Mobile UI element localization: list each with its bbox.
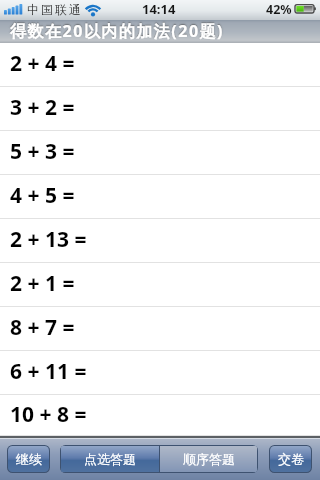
staticText: 10 + 8 = xyxy=(10,400,87,429)
staticText: 8 + 7 = xyxy=(10,313,75,342)
staticText: 2 + 1 = xyxy=(10,269,75,298)
staticText: 5 + 3 = xyxy=(10,137,75,166)
staticText: 42% xyxy=(266,1,292,18)
button[interactable]: 6 + 11 = xyxy=(0,351,320,395)
staticText: 3 + 2 = xyxy=(10,93,75,122)
other: Wi-Fi xyxy=(85,2,103,18)
button[interactable]: 10 + 8 = xyxy=(0,395,320,436)
staticText: 交卷 xyxy=(278,451,304,467)
staticText: 14:14 xyxy=(142,0,176,18)
staticText: 中国联通 xyxy=(26,2,82,17)
staticText: 继续 xyxy=(16,451,42,467)
other: Signal strength xyxy=(4,0,28,20)
button[interactable]: 8 + 7 = xyxy=(0,307,320,351)
staticText: 6 + 11 = xyxy=(10,357,87,386)
button[interactable]: 2 + 1 = xyxy=(0,263,320,307)
staticText: 顺序答题 xyxy=(183,451,235,467)
button[interactable]: 2 + 13 = xyxy=(0,219,320,263)
staticText: 得数在20以内的加法(20题) xyxy=(10,20,224,42)
button[interactable]: 点选答题 xyxy=(61,446,159,472)
button[interactable]: 交卷 xyxy=(270,446,311,472)
button[interactable]: 3 + 2 = xyxy=(0,87,320,131)
staticText: 2 + 4 = xyxy=(10,49,75,78)
button[interactable]: 4 + 5 = xyxy=(0,175,320,219)
button[interactable]: 顺序答题 xyxy=(160,446,257,472)
button[interactable]: 5 + 3 = xyxy=(0,131,320,175)
button[interactable]: 2 + 4 = xyxy=(0,43,320,87)
staticText: 2 + 13 = xyxy=(10,225,87,254)
other: Battery 42 percent xyxy=(294,2,320,18)
button[interactable]: 继续 xyxy=(8,446,49,472)
staticText: 4 + 5 = xyxy=(10,181,75,210)
staticText: 点选答题 xyxy=(84,451,136,467)
